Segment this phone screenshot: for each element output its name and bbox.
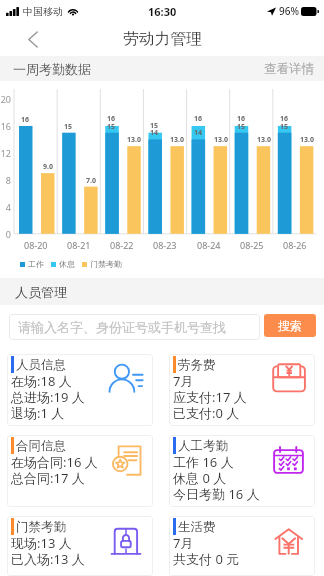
button[interactable]: 生活费 — [169, 516, 315, 576]
staticText: 人员管理 — [15, 284, 67, 300]
staticText: 13.0 — [214, 135, 228, 145]
staticText: 08-24 — [197, 239, 221, 251]
staticText: 15 — [64, 122, 73, 132]
staticText: 工作 — [28, 259, 44, 269]
staticText: 请输入名字、身份证号或手机号查找 — [18, 319, 226, 335]
staticText: 门禁考勤 — [16, 519, 66, 535]
staticText: 在场合同:16 人 总合同:17 人 — [11, 455, 98, 487]
staticText: 12 — [0, 147, 11, 159]
staticText: 14 — [150, 128, 159, 138]
staticText: 16 — [21, 115, 30, 125]
staticText: 休息 — [59, 259, 75, 269]
staticText: 16 — [194, 114, 203, 124]
staticText: 生活费 — [178, 519, 216, 535]
staticText: 08-22 — [110, 239, 134, 251]
button[interactable]: 门禁考勤 — [7, 516, 153, 576]
button[interactable]: 查看详情 — [254, 56, 324, 81]
staticText: 16 — [280, 114, 289, 124]
staticText: 门禁考勤 — [90, 259, 122, 269]
staticText: 劳务费 — [178, 357, 216, 373]
staticText: 16 — [0, 120, 11, 132]
staticText: 劳动力管理 — [123, 29, 202, 49]
button[interactable]: 合同信息 — [7, 435, 153, 507]
staticText: 现场:13 人 已入场:13 人 — [11, 536, 85, 568]
staticText: 08-23 — [153, 239, 177, 251]
staticText: 人员信息 — [16, 357, 66, 373]
staticText: 人工考勤 — [178, 438, 228, 454]
staticText: 08-26 — [283, 239, 307, 251]
staticText: 在场:18 人 总进场:19 人 退场:1 人 — [11, 374, 85, 422]
staticText: 9.0 — [43, 162, 53, 172]
staticText: 合同信息 — [16, 438, 66, 454]
staticText: 工作 16 人 休息 0 人 今日考勤 16 人 — [173, 455, 260, 503]
button[interactable]: 人工考勤 — [169, 435, 315, 507]
button[interactable]: 人员信息 — [7, 354, 153, 426]
staticText: 7.0 — [86, 176, 96, 186]
staticText: 搜索 — [278, 318, 302, 333]
staticText: 15 — [237, 122, 246, 132]
staticText: 16 — [237, 114, 246, 124]
staticText: 7月 应支付:17 人 已支付:0 人 — [173, 374, 247, 422]
staticText: 0 — [5, 228, 11, 240]
staticText: 20 — [0, 93, 11, 105]
staticText: 中国移动 — [23, 5, 63, 18]
button[interactable]: 搜索 — [264, 314, 316, 337]
staticText: 13.0 — [257, 135, 271, 145]
staticText: 15 — [107, 122, 116, 132]
staticText: 13.0 — [127, 135, 141, 145]
staticText: 4 — [5, 201, 11, 213]
staticText: 7月 共支付 0 元 — [173, 536, 240, 568]
staticText: 08-21 — [67, 239, 91, 251]
staticText: 8 — [5, 174, 11, 186]
staticText: 13.0 — [170, 135, 184, 145]
staticText: 14 — [194, 128, 203, 138]
button[interactable]: 劳务费 — [169, 354, 315, 426]
staticText: 96% — [279, 4, 299, 18]
staticText: 15 — [280, 122, 289, 132]
staticText: 查看详情 — [264, 61, 314, 77]
staticText: 一周考勤数据 — [13, 61, 91, 77]
button[interactable]: Back — [18, 25, 47, 54]
staticText: 16:30 — [148, 4, 177, 19]
staticText: 13.0 — [300, 135, 314, 145]
staticText: 08-25 — [240, 239, 264, 251]
staticText: 16 — [107, 114, 116, 124]
staticText: 15 — [150, 121, 159, 131]
button[interactable]: 请输入名字、身份证号或手机号查找 — [9, 314, 260, 340]
staticText: 08-20 — [24, 239, 48, 251]
